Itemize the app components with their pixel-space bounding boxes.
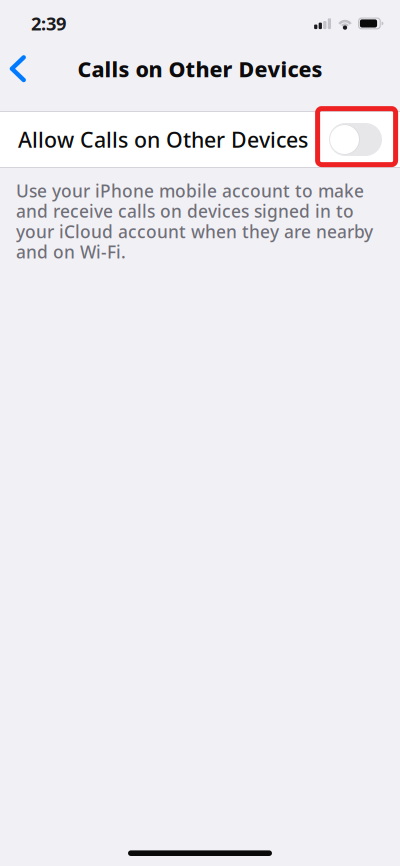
staticText: Use your iPhone mobile account to make a… [16,179,373,263]
staticText: Allow Calls on Other Devices [18,125,308,154]
button[interactable]: Back [0,47,36,91]
staticText: 2:39 [31,11,66,36]
staticText: Calls on Other Devices [77,54,322,83]
button[interactable]: Allow Calls on Other Devices [0,112,400,167]
